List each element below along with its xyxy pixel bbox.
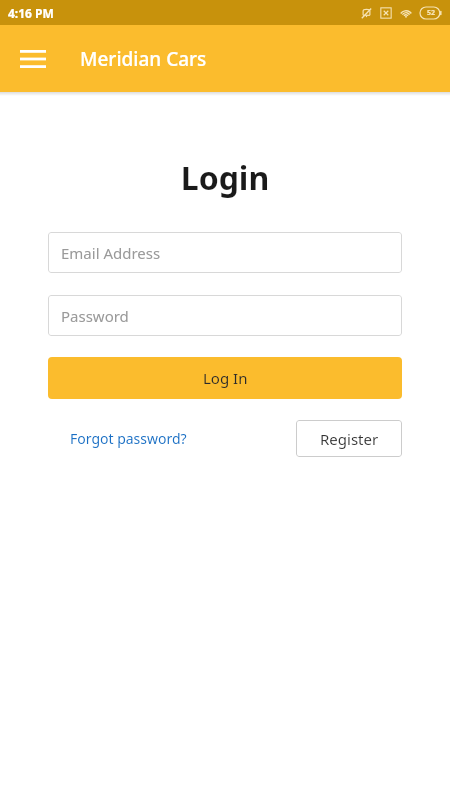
staticText: Meridian Cars (80, 46, 207, 72)
staticText: Email Address (61, 243, 161, 263)
button[interactable]: Password (48, 295, 402, 336)
staticText: Register (320, 429, 379, 449)
staticText: 4:16 PM (8, 5, 54, 21)
button[interactable]: Register (296, 420, 402, 457)
button[interactable]: Email Address (48, 232, 402, 273)
staticText: Log In (203, 368, 248, 388)
button[interactable]: Log In (48, 357, 402, 399)
staticText: Forgot password? (70, 429, 187, 448)
staticText: Login (0, 156, 450, 200)
button[interactable]: Forgot password? (48, 423, 193, 454)
button[interactable]: Open navigation menu (10, 36, 56, 82)
staticText: Password (61, 306, 129, 326)
staticText: 52 (427, 8, 436, 18)
